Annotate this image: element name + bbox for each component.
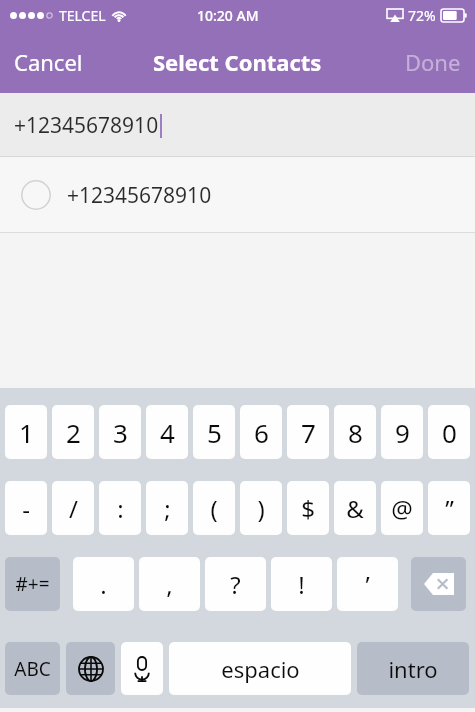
staticText: 1 [19,415,34,450]
staticText: ? [230,568,241,601]
button[interactable]: 5 [193,405,235,459]
button[interactable]: . [73,557,134,611]
staticText: Cancel [14,47,83,77]
button[interactable]: Dictation [121,642,163,695]
button[interactable]: @ [381,481,423,535]
button[interactable]: 7 [287,405,329,459]
staticText: , [166,568,173,601]
staticText: Done [405,47,461,77]
staticText: 5 [207,415,222,450]
staticText: ; [164,492,171,525]
staticText: & [346,492,364,525]
button[interactable]: Change keyboard language [66,642,115,695]
staticText: ” [445,492,454,525]
staticText: ABC [14,656,51,682]
button[interactable]: / [52,481,94,535]
staticText: 0 [442,415,457,450]
staticText: ( [210,492,218,525]
button[interactable]: ’ [337,557,398,611]
staticText: 9 [395,415,410,450]
staticText: @ [391,492,413,525]
staticText: 7 [301,415,316,450]
staticText: $ [301,492,315,525]
staticText: ! [298,568,305,601]
button[interactable]: Cancel [6,41,91,83]
button[interactable]: +12345678910 [0,157,475,233]
button[interactable]: ABC [5,642,60,695]
staticText: +12345678910 [14,111,159,140]
staticText: espacio [221,654,300,684]
button[interactable]: ; [146,481,188,535]
button[interactable]: intro [357,642,469,695]
staticText: intro [388,654,438,684]
staticText: 8 [348,415,363,450]
button[interactable]: $ [287,481,329,535]
staticText: 6 [254,415,269,450]
button[interactable]: 3 [99,405,141,459]
staticText: 4 [160,415,175,450]
staticText: 2 [66,415,81,450]
button[interactable]: 4 [146,405,188,459]
staticText: +12345678910 [67,181,212,210]
button[interactable]: +12345678910 [0,93,475,157]
staticText: - [22,492,30,525]
staticText: 3 [113,415,128,450]
button[interactable]: 9 [381,405,423,459]
button[interactable]: , [139,557,200,611]
button[interactable]: 6 [240,405,282,459]
staticText: . [100,568,107,601]
button[interactable]: ” [428,481,470,535]
staticText: #+= [15,571,50,597]
button[interactable]: Done [397,41,469,83]
staticText: ) [257,492,265,525]
staticText: : [117,492,124,525]
staticText: 72% [408,6,436,25]
staticText: 10:20 AM [197,6,259,25]
button[interactable]: 8 [334,405,376,459]
staticText: Select Contacts [153,47,322,77]
button[interactable]: - [5,481,47,535]
staticText: ’ [365,568,370,601]
button[interactable]: 0 [428,405,470,459]
button[interactable]: 2 [52,405,94,459]
button[interactable]: & [334,481,376,535]
staticText: TELCEL [59,6,106,25]
button[interactable]: #+= [5,557,60,611]
button[interactable]: Backspace [411,557,466,611]
button[interactable]: 1 [5,405,47,459]
button[interactable]: ! [271,557,332,611]
button[interactable]: ? [205,557,266,611]
staticText: / [69,492,78,525]
button[interactable]: ) [240,481,282,535]
button[interactable]: ( [193,481,235,535]
button[interactable]: espacio [169,642,351,695]
button[interactable]: : [99,481,141,535]
